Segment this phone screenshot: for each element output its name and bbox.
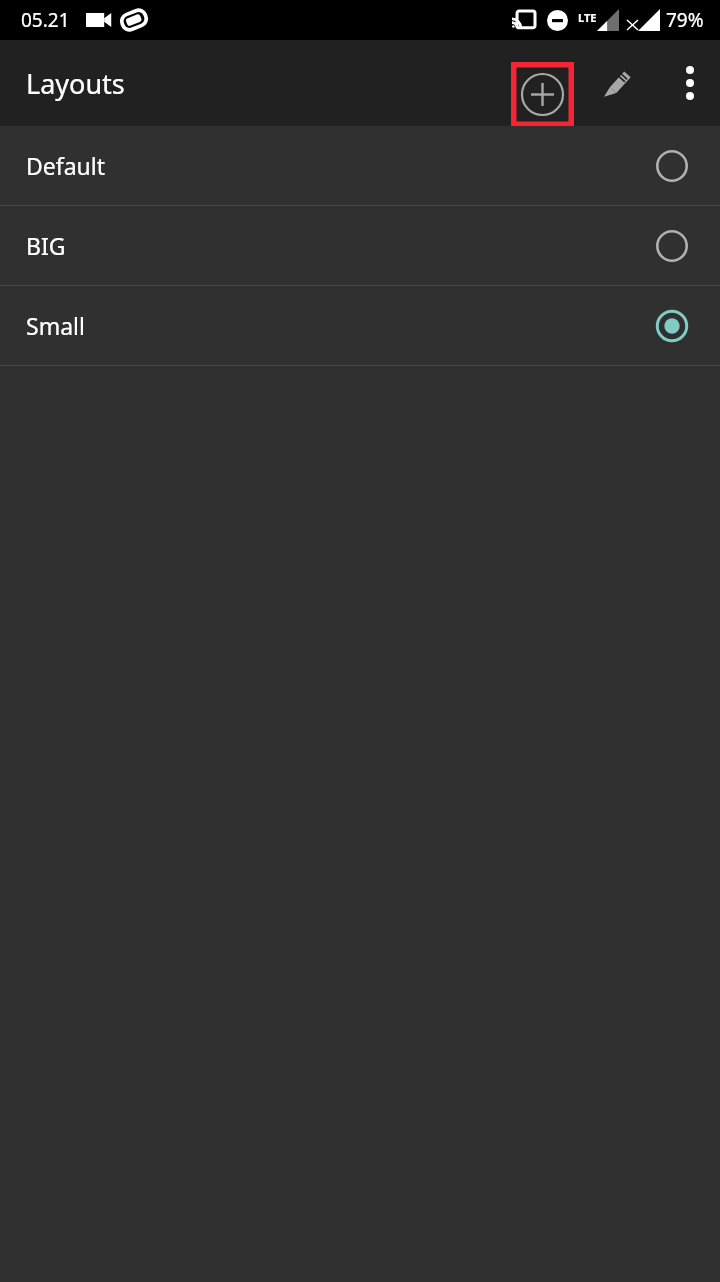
- staticText: BIG: [26, 230, 652, 261]
- button[interactable]: Small: [0, 286, 720, 365]
- staticText: Small: [26, 310, 652, 341]
- button[interactable]: More options: [660, 48, 720, 118]
- staticText: Layouts: [26, 65, 125, 102]
- button[interactable]: Add layout: [511, 62, 574, 127]
- staticText: 05.21: [21, 7, 70, 33]
- staticText: 79%: [666, 7, 704, 33]
- button[interactable]: Edit: [589, 55, 645, 111]
- staticText: LTE: [578, 10, 597, 25]
- button[interactable]: BIG: [0, 206, 720, 285]
- staticText: Default: [26, 150, 652, 181]
- button[interactable]: Default: [0, 126, 720, 205]
